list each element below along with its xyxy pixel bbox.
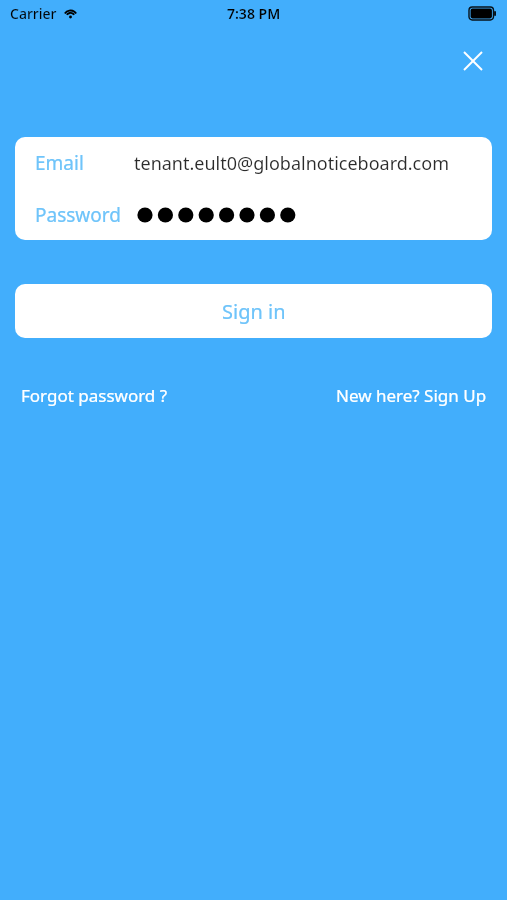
button[interactable]: Forgot password ? — [21, 382, 168, 409]
button[interactable]: Password — [15, 189, 492, 240]
staticText: Sign in — [222, 298, 286, 325]
staticText: tenant.eult0@globalnoticeboard.com — [134, 151, 449, 176]
button[interactable]: New here? Sign Up — [336, 382, 487, 409]
staticText: Forgot password ? — [21, 384, 168, 407]
staticText: Email — [35, 150, 84, 176]
staticText: New here? Sign Up — [336, 384, 487, 407]
button[interactable]: Close — [456, 44, 490, 78]
staticText: Carrier — [10, 4, 57, 23]
button[interactable]: Sign in — [15, 284, 492, 338]
staticText: Password — [35, 202, 121, 228]
button[interactable]: Email — [15, 137, 492, 189]
staticText: 7:38 PM — [227, 4, 281, 23]
